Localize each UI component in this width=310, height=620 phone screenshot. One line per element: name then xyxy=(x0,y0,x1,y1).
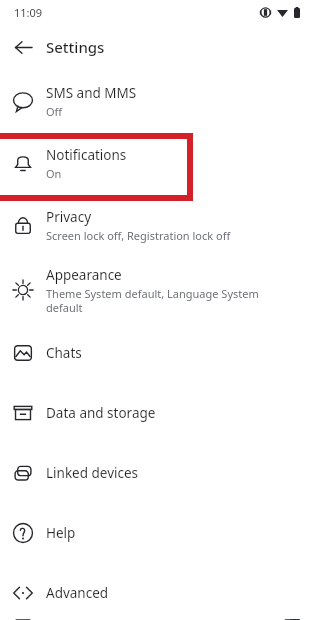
staticText: Advanced xyxy=(46,584,109,602)
button[interactable]: Appearance xyxy=(0,264,310,316)
staticText: Settings xyxy=(46,37,105,57)
staticText: Linked devices xyxy=(46,464,139,482)
button[interactable]: Help xyxy=(0,510,310,556)
button[interactable]: SMS and MMS xyxy=(0,78,310,124)
staticText: Appearance xyxy=(46,266,122,284)
staticText: Off xyxy=(46,104,63,119)
staticText: Screen lock off, Registration lock off xyxy=(46,228,231,243)
staticText: SMS and MMS xyxy=(46,84,137,102)
button[interactable]: Data and storage xyxy=(0,390,310,436)
staticText: Notifications xyxy=(46,146,127,164)
button[interactable]: Chats xyxy=(0,330,310,376)
staticText: Help xyxy=(46,524,76,542)
button[interactable]: Linked devices xyxy=(0,450,310,496)
staticText: Chats xyxy=(46,344,82,362)
staticText: Privacy xyxy=(46,208,92,226)
staticText: Data and storage xyxy=(46,404,156,422)
button[interactable]: Privacy xyxy=(0,202,310,248)
button[interactable]: Back xyxy=(0,24,46,70)
button[interactable]: Notifications xyxy=(0,140,310,186)
staticText: On xyxy=(46,166,62,181)
button[interactable]: Advanced xyxy=(0,570,310,616)
staticText: Theme System default, Language System de… xyxy=(46,286,296,315)
staticText: 11:09 xyxy=(14,5,43,20)
